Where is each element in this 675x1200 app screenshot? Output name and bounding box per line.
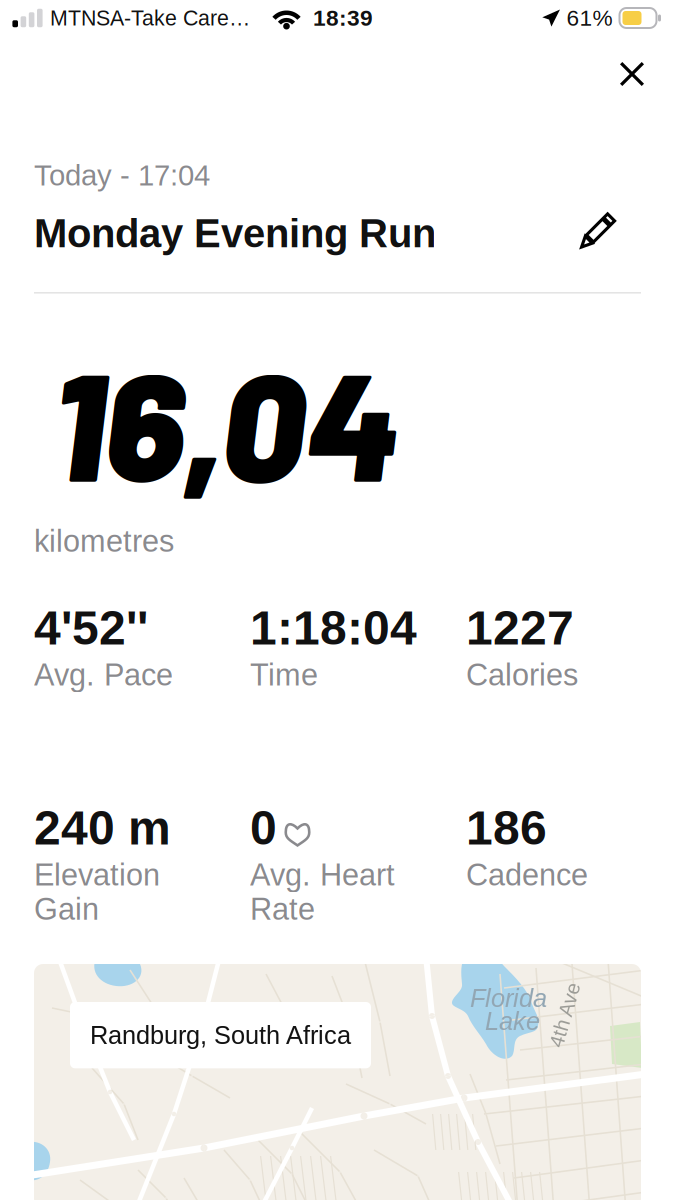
staticText: 1:18:04 bbox=[250, 601, 417, 655]
staticText: Avg. Heart Rate bbox=[250, 858, 395, 926]
staticText: Calories bbox=[466, 658, 578, 692]
staticText: Florida bbox=[470, 984, 547, 1012]
staticText: 186 bbox=[466, 801, 547, 855]
staticText: kilometres bbox=[34, 524, 174, 558]
staticText: Elevation Gain bbox=[34, 858, 160, 926]
staticText: Avg. Pace bbox=[34, 658, 173, 692]
staticText: 61% bbox=[566, 5, 612, 31]
staticText: 16,04 bbox=[52, 331, 399, 512]
staticText: 18:39 bbox=[313, 5, 373, 31]
button[interactable]: Edit run name bbox=[580, 210, 617, 250]
staticText: Randburg, South Africa bbox=[90, 1021, 351, 1049]
staticText: 0 bbox=[250, 801, 277, 855]
staticText: Monday Evening Run bbox=[34, 211, 436, 256]
staticText: 4'52'' bbox=[34, 601, 148, 655]
staticText: MTNSA-Take Care… bbox=[50, 6, 250, 30]
staticText: 4th Ave bbox=[532, 1004, 598, 1026]
staticText: 1227 bbox=[466, 601, 574, 655]
staticText: Lake bbox=[485, 1007, 540, 1035]
staticText: 240 m bbox=[34, 801, 171, 855]
staticText: Time bbox=[250, 658, 318, 692]
button[interactable]: Close bbox=[607, 49, 657, 99]
staticText: Cadence bbox=[466, 858, 588, 892]
staticText: Today - 17:04 bbox=[34, 159, 210, 192]
